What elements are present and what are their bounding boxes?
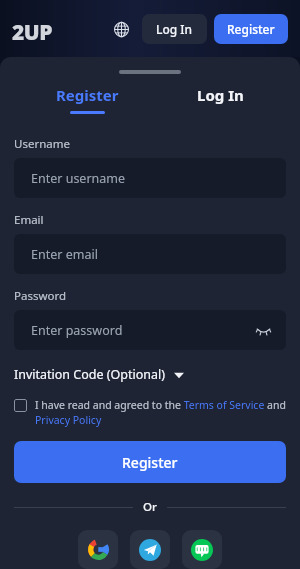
staticText: Enter username xyxy=(31,170,126,187)
button[interactable]: 2UP home xyxy=(12,18,66,40)
button[interactable]: Register xyxy=(14,441,286,483)
button[interactable]: Invitation Code (Optional) xyxy=(14,364,184,385)
staticText: Invitation Code (Optional) xyxy=(14,366,166,383)
staticText: Log In xyxy=(156,21,193,37)
staticText: Email xyxy=(14,212,44,228)
staticText: Username xyxy=(14,136,70,152)
button[interactable]: Show password xyxy=(253,320,273,340)
staticText: Log In xyxy=(197,85,244,105)
staticText: Enter email xyxy=(31,246,98,263)
staticText: Register xyxy=(122,453,178,472)
button[interactable]: Enter username xyxy=(14,158,286,198)
staticText: Register xyxy=(227,21,275,37)
button[interactable]: Log In xyxy=(181,83,260,116)
staticText: Or xyxy=(143,499,157,515)
staticText: Password xyxy=(14,288,67,304)
button[interactable]: Sign in with Telegram xyxy=(130,530,170,569)
button[interactable]: Log In xyxy=(142,14,207,44)
button[interactable]: I have read and agreed to the Terms of S… xyxy=(14,398,286,427)
staticText: Register xyxy=(56,85,119,105)
button[interactable]: Register xyxy=(40,83,135,116)
button[interactable]: Language xyxy=(108,16,134,42)
button[interactable]: Sign in with Google xyxy=(78,530,118,569)
button[interactable]: Enter password xyxy=(14,310,286,350)
staticText: Enter password xyxy=(31,322,123,339)
staticText: 2UP xyxy=(12,18,52,40)
button[interactable]: Register xyxy=(214,14,288,44)
button[interactable]: Enter email xyxy=(14,234,286,274)
button[interactable]: Sign in with LINE xyxy=(182,530,222,569)
staticText: I have read and agreed to the Terms of S… xyxy=(35,398,286,427)
